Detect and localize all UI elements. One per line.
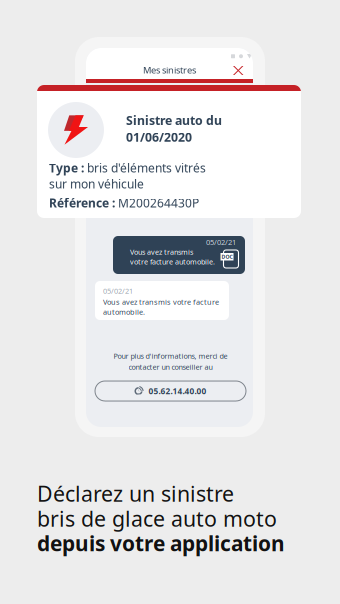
staticText: contacter un conseiller au bbox=[128, 362, 212, 372]
staticText: Type : bris d'éléments vitrés sur mon vé… bbox=[49, 160, 206, 192]
staticText: 05/02/21 bbox=[206, 237, 236, 247]
staticText: automobile. bbox=[103, 307, 145, 317]
staticText: DOC bbox=[221, 253, 232, 260]
staticText: bris de glace auto moto bbox=[37, 504, 277, 533]
button[interactable]: 05.62.14.40.00 bbox=[95, 381, 246, 401]
staticText: Pour plus d'informations, merci de bbox=[113, 351, 227, 361]
staticText: Vous avez transmis votre facture bbox=[103, 297, 219, 307]
staticText: Mes sinistres bbox=[143, 64, 196, 76]
button[interactable]: Fermer bbox=[233, 66, 243, 75]
staticText: Sinistre auto du 01/06/2020 bbox=[126, 112, 222, 145]
staticText: 05.62.14.40.00 bbox=[148, 385, 206, 397]
staticText: Vous avez transmis votre facture automob… bbox=[130, 247, 215, 267]
staticText: Référence : M200264430P bbox=[49, 195, 199, 211]
staticText: depuis votre application bbox=[37, 529, 285, 557]
staticText: 05/02/21 bbox=[103, 286, 133, 296]
staticText: Déclarez un sinistre bbox=[37, 479, 234, 508]
